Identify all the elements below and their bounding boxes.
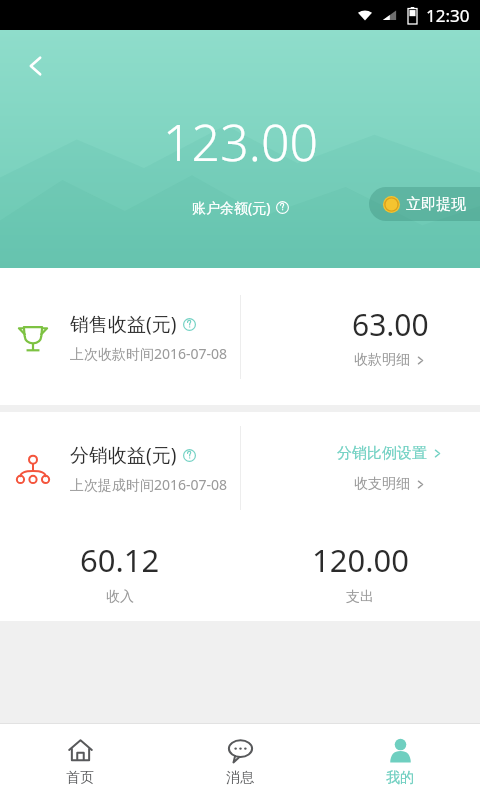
staticText: 12:30 (426, 4, 470, 27)
staticText: 上次收款时间2016-07-08 (70, 344, 228, 363)
staticText: 上次提成时间2016-07-08 (70, 475, 228, 494)
staticText: 销售收益(元) (70, 311, 177, 337)
button[interactable]: 消息 (160, 724, 320, 800)
button[interactable]: 120.00 (240, 524, 480, 621)
staticText: 账户余额(元) (192, 198, 271, 217)
staticText: 收支明细 (354, 475, 410, 493)
button[interactable]: 收支明细 (354, 475, 427, 493)
staticText: 立即提现 (406, 195, 466, 214)
staticText: 123.00 (163, 108, 318, 176)
button[interactable]: 60.12 (0, 524, 240, 621)
staticText: 我的 (386, 769, 414, 787)
staticText: 消息 (226, 769, 254, 787)
staticText: 支出 (346, 588, 374, 606)
staticText: 收款明细 (354, 351, 410, 369)
staticText: 分销收益(元) (70, 442, 177, 468)
staticText: 收入 (106, 588, 134, 606)
staticText: 分销比例设置 (337, 444, 427, 463)
staticText: 60.12 (80, 539, 160, 581)
button[interactable]: 首页 (0, 724, 160, 800)
staticText: 120.00 (312, 539, 409, 581)
button[interactable]: Back (14, 44, 58, 88)
button[interactable]: 63.00 (300, 268, 480, 405)
button[interactable]: 分销收益(元) (0, 412, 300, 524)
button[interactable]: 分销比例设置 (337, 444, 444, 463)
staticText: 首页 (66, 769, 94, 787)
button[interactable]: 立即提现 (369, 187, 480, 221)
button[interactable]: 我的 (320, 724, 480, 800)
button[interactable]: 销售收益(元) (0, 268, 300, 405)
staticText: 63.00 (352, 304, 429, 345)
